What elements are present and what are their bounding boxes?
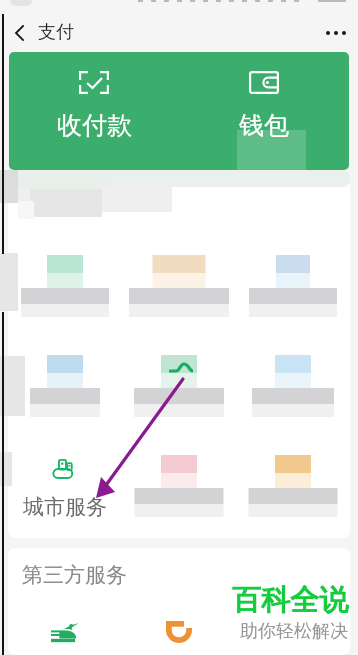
staticText: 支付	[38, 21, 74, 44]
button[interactable]: 城市服务	[8, 435, 122, 535]
staticText: 助你轻松解决	[240, 620, 348, 643]
staticText: 钱包	[239, 110, 289, 141]
button[interactable]	[122, 335, 236, 435]
button[interactable]	[8, 335, 122, 435]
button[interactable]	[122, 235, 236, 335]
staticText: 城市服务	[23, 494, 107, 520]
button[interactable]: More options	[314, 13, 358, 52]
button[interactable]	[122, 435, 236, 535]
button[interactable]	[236, 235, 350, 335]
staticText: 第三方服务	[22, 562, 127, 588]
button[interactable]	[236, 335, 350, 435]
button[interactable]: Back	[0, 14, 38, 52]
staticText: 收付款	[57, 110, 132, 141]
button[interactable]: 滴滴出行	[122, 588, 236, 655]
staticText: 百科全说	[232, 582, 348, 619]
button[interactable]	[236, 435, 350, 535]
button[interactable]: 收付款	[9, 52, 179, 141]
button[interactable]	[8, 235, 122, 335]
button[interactable]: 钱包	[179, 52, 349, 141]
button[interactable]: 火车票机票	[8, 588, 122, 655]
